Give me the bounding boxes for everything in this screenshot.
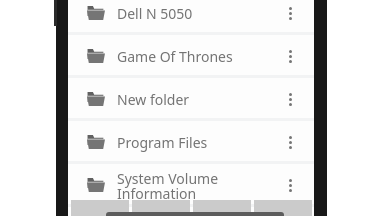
button[interactable]: Add (193, 200, 251, 216)
button[interactable]: Home (71, 200, 129, 216)
button[interactable]: More options (266, 35, 315, 78)
button[interactable]: More options (266, 164, 315, 207)
button[interactable]: Game Of Thrones (68, 35, 315, 78)
button[interactable]: Search (132, 200, 190, 216)
button[interactable]: More options (266, 0, 315, 35)
button[interactable]: Menu (254, 200, 312, 216)
staticText: System Volume Information (117, 169, 258, 203)
staticText: Game Of Thrones (117, 47, 258, 66)
button[interactable]: Program Files (68, 121, 315, 164)
button[interactable]: Dell N 5050 (68, 0, 315, 35)
button[interactable]: System Volume Information (68, 164, 315, 207)
button[interactable]: New folder (68, 78, 315, 121)
button[interactable]: More options (266, 78, 315, 121)
staticText: Program Files (117, 133, 258, 152)
button[interactable]: More options (266, 121, 315, 164)
staticText: Dell N 5050 (117, 4, 258, 23)
staticText: New folder (117, 90, 258, 109)
